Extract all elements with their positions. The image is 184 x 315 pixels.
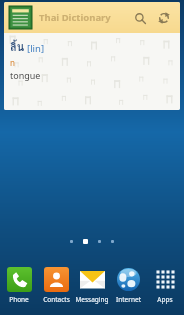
button[interactable]: Apps xyxy=(148,263,182,304)
button[interactable]: Thai Dictionary xyxy=(4,2,180,33)
button[interactable]: Search xyxy=(129,7,151,29)
staticText: Phone xyxy=(9,295,29,304)
staticText: Apps xyxy=(157,295,173,304)
button[interactable]: Internet xyxy=(111,263,145,304)
staticText: Internet xyxy=(116,295,141,304)
staticText: [lin] xyxy=(27,42,45,55)
button[interactable]: Refresh xyxy=(153,7,175,29)
button[interactable]: Contacts xyxy=(39,263,73,304)
staticText: n xyxy=(10,57,15,68)
staticText: Contacts xyxy=(43,295,70,304)
staticText: Messaging xyxy=(75,295,109,304)
button[interactable]: ลิ้น xyxy=(4,33,180,110)
staticText: tongue xyxy=(10,69,41,81)
staticText: ลิ้น xyxy=(10,38,25,55)
button[interactable]: Phone xyxy=(2,263,36,304)
button[interactable]: Messaging xyxy=(75,263,109,304)
staticText: Thai Dictionary xyxy=(39,11,111,24)
